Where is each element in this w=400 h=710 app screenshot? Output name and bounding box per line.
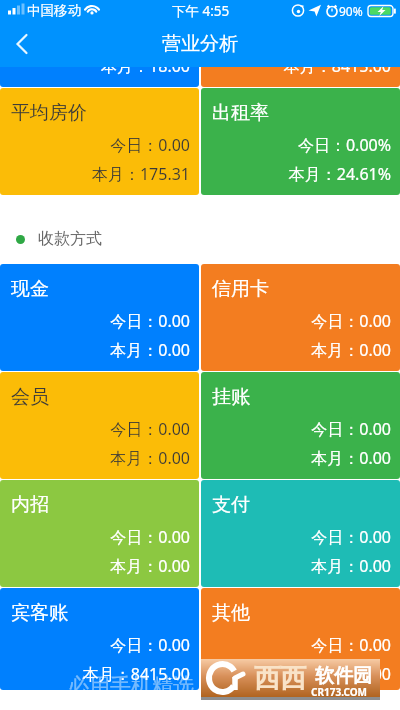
staticText: 本月：0.00 [201,555,391,577]
staticText: 本月：8415.00 [201,55,391,77]
staticText: 本月：18.00 [0,55,190,77]
staticText: 营业分析 [162,32,238,56]
staticText: 本月：0.00 [201,447,391,469]
button[interactable]: Back [0,22,44,66]
button[interactable]: 出租率 [201,88,400,195]
staticText: 今日：0.00% [201,134,391,156]
staticText: 内招 [11,493,49,517]
staticText: 本月：0.00 [201,663,391,685]
staticText: 今日：0.00 [0,26,190,48]
staticText: 其他 [212,601,250,625]
staticText: 本月：0.00 [201,339,391,361]
staticText: 营业额 [212,0,269,17]
staticText: 挂账 [212,385,250,409]
staticText: 今日：0.00 [201,634,391,656]
button[interactable]: 支付 [201,480,400,587]
staticText: 今日：0.00 [201,418,391,440]
staticText: 西西 [254,662,306,695]
button[interactable]: 现金 [0,264,199,371]
staticText: 会员 [11,385,49,409]
staticText: 今日：0.00 [0,526,190,548]
staticText: 平均房价 [11,101,87,125]
staticText: 支付 [212,493,250,517]
button[interactable]: 入住率 [0,0,199,87]
staticText: 中国移动 [27,2,81,19]
staticText: 今日：0.00 [0,134,190,156]
button[interactable]: 信用卡 [201,264,400,371]
button[interactable]: 其他 [201,588,400,690]
staticText: 现金 [11,277,49,301]
staticText: 下午 4:55 [172,2,230,20]
staticText: 软件园 [315,664,372,688]
staticText: 必用手机精选 [68,673,194,699]
staticText: 入住率 [11,0,68,17]
staticText: CR173.COM [311,685,368,699]
staticText: 今日：0.00 [201,526,391,548]
staticText: 今日：0.00 [0,634,190,656]
staticText: 宾客账 [11,601,68,625]
button[interactable]: 宾客账 [0,588,199,690]
button[interactable]: 内招 [0,480,199,587]
staticText: 今日：0.00 [201,26,391,48]
staticText: 本月：8415.00 [0,663,190,685]
staticText: 90% [339,3,363,19]
staticText: 本月：0.00 [0,447,190,469]
staticText: 本月：0.00 [0,339,190,361]
button[interactable]: 营业额 [201,0,400,87]
staticText: 今日：0.00 [0,310,190,332]
button[interactable]: 平均房价 [0,88,199,195]
staticText: 出租率 [212,101,269,125]
staticText: 信用卡 [212,277,269,301]
staticText: 今日：0.00 [201,310,391,332]
staticText: 本月：0.00 [0,555,190,577]
button[interactable]: 会员 [0,372,199,479]
staticText: 收款方式 [38,229,102,249]
button[interactable]: 挂账 [201,372,400,479]
staticText: 本月：24.61% [201,163,391,185]
staticText: 本月：175.31 [0,163,190,185]
staticText: 今日：0.00 [0,418,190,440]
